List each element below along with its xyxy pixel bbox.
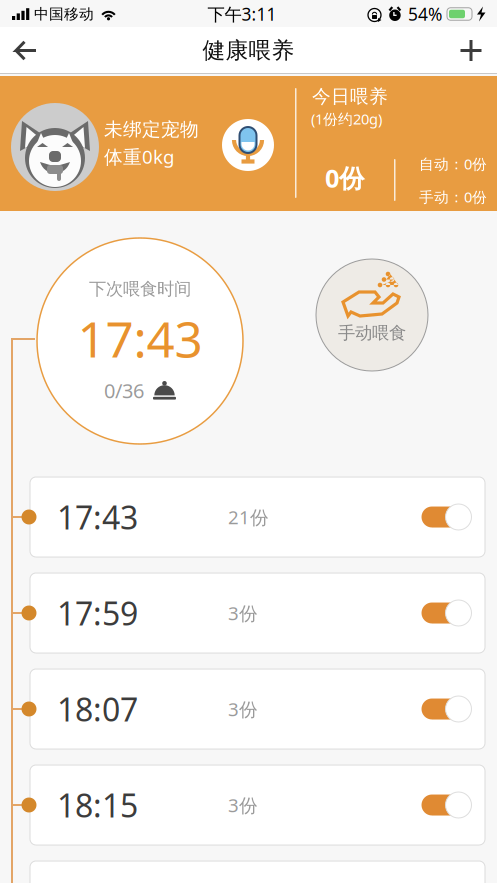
staticText: 下午3:11: [207, 2, 276, 25]
staticText: 中国移动: [34, 5, 94, 23]
staticText: 3份: [228, 793, 258, 817]
staticText: 54%: [408, 2, 442, 25]
staticText: 17:43: [57, 496, 138, 538]
button[interactable]: Back: [0, 27, 52, 74]
staticText: 3份: [228, 697, 258, 721]
staticText: (1份约20g): [311, 109, 382, 128]
staticText: 17:59: [57, 592, 138, 634]
staticText: 体重0kg: [104, 144, 174, 169]
staticText: 0/36: [104, 377, 144, 404]
staticText: 下次喂食时间: [89, 278, 191, 300]
staticText: 健康喂养: [202, 37, 294, 64]
button[interactable]: 18:07: [30, 669, 485, 749]
staticText: 3份: [228, 601, 258, 625]
staticText: 0份: [325, 161, 364, 195]
button[interactable]: 18:15: [30, 765, 485, 845]
button[interactable]: Add: [445, 27, 497, 74]
staticText: 今日喂养: [312, 85, 388, 108]
staticText: 手动喂食: [338, 322, 406, 344]
staticText: 18:07: [57, 688, 138, 730]
staticText: 手动：0份: [419, 187, 487, 206]
button[interactable]: 17:43: [30, 477, 485, 557]
staticText: 未绑定宠物: [104, 118, 199, 141]
staticText: 17:43: [77, 306, 202, 371]
button[interactable]: Voice: [222, 119, 274, 171]
staticText: 21份: [228, 505, 269, 529]
staticText: 18:15: [57, 784, 138, 826]
button[interactable]: 手动喂食: [316, 259, 428, 371]
button[interactable]: 17:59: [30, 573, 485, 653]
staticText: 自动：0份: [419, 154, 487, 173]
button[interactable]: 18:23: [30, 861, 485, 883]
